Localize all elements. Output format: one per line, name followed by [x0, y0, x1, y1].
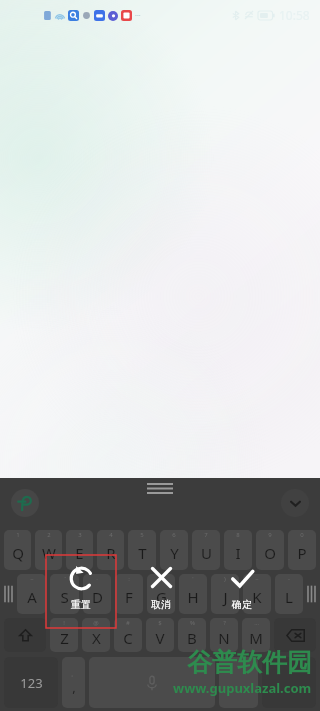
button[interactable]: @: [82, 618, 110, 652]
staticText: U: [201, 543, 212, 563]
staticText: F: [125, 587, 133, 607]
staticText: 0: [300, 531, 304, 539]
button[interactable]: 7: [192, 530, 220, 570]
button[interactable]: 6: [160, 530, 188, 570]
staticText: -: [288, 575, 290, 583]
button[interactable]: 取消: [146, 565, 176, 595]
staticText: 7: [204, 531, 208, 539]
staticText: ): [224, 575, 226, 583]
staticText: M: [249, 628, 263, 648]
button[interactable]: …: [242, 618, 270, 652]
button[interactable]: $: [146, 618, 174, 652]
button[interactable]: ~: [243, 574, 271, 614]
button[interactable]: 1: [4, 530, 31, 570]
staticText: 8: [236, 531, 240, 539]
staticText: ···: [135, 11, 141, 21]
staticText: H: [187, 587, 199, 607]
staticText: K: [252, 587, 262, 607]
staticText: ,: [72, 678, 76, 696]
staticText: Z: [60, 628, 69, 648]
staticText: $: [158, 619, 162, 627]
button[interactable]: ·: [83, 574, 111, 614]
button[interactable]: [219, 657, 258, 708]
staticText: ~: [255, 575, 259, 583]
staticText: !: [63, 619, 65, 627]
staticText: W: [42, 543, 56, 563]
button[interactable]: Shift: [4, 618, 46, 652]
staticText: 5: [140, 531, 144, 539]
button[interactable]: 删除: [274, 618, 316, 652]
button[interactable]: ': [179, 574, 207, 614]
staticText: 10:58: [279, 7, 310, 23]
staticText: S: [60, 587, 69, 607]
staticText: 6: [172, 531, 176, 539]
staticText: `: [64, 575, 66, 583]
staticText: ;: [160, 575, 162, 583]
button[interactable]: 空格 语音输入: [89, 657, 215, 708]
staticText: E: [75, 543, 84, 563]
button[interactable]: [262, 657, 316, 708]
button[interactable]: ?: [210, 618, 238, 652]
staticText: G: [156, 587, 167, 607]
button[interactable]: 输入法设置: [11, 489, 39, 517]
staticText: X: [92, 628, 101, 648]
staticText: 9: [268, 531, 272, 539]
button[interactable]: 收起键盘: [281, 489, 309, 517]
button[interactable]: `: [50, 574, 79, 614]
staticText: L: [285, 587, 293, 607]
button[interactable]: ): [211, 574, 239, 614]
staticText: 重置: [56, 598, 106, 611]
button[interactable]: :: [115, 574, 143, 614]
staticText: #: [126, 619, 130, 627]
button[interactable]: %: [178, 618, 206, 652]
button[interactable]: 9: [256, 530, 284, 570]
staticText: @: [93, 619, 99, 627]
staticText: V: [155, 628, 165, 648]
button[interactable]: 3: [66, 530, 93, 570]
button[interactable]: ~: [17, 574, 46, 614]
button[interactable]: 8: [224, 530, 252, 570]
staticText: 4: [109, 531, 113, 539]
staticText: %: [190, 619, 195, 627]
staticText: 1: [16, 531, 20, 539]
staticText: Y: [170, 543, 179, 563]
staticText: P: [297, 543, 307, 563]
staticText: D: [92, 587, 103, 607]
staticText: www.gupuxlazal.com: [173, 679, 312, 697]
staticText: T: [138, 543, 147, 563]
staticText: R: [106, 543, 116, 563]
staticText: I: [235, 543, 241, 563]
staticText: N: [218, 628, 230, 648]
staticText: 123: [20, 674, 43, 692]
staticText: B: [187, 628, 197, 648]
staticText: 2: [47, 531, 51, 539]
button[interactable]: 0: [288, 530, 316, 570]
button[interactable]: 5: [128, 530, 156, 570]
staticText: 取消: [136, 598, 186, 611]
staticText: J: [223, 587, 228, 607]
staticText: Q: [12, 543, 24, 563]
staticText: A: [27, 587, 37, 607]
button[interactable]: ;: [147, 574, 175, 614]
staticText: 确定: [217, 598, 267, 611]
staticText: ~: [30, 575, 34, 583]
button[interactable]: 确定: [226, 566, 258, 598]
button[interactable]: 2: [35, 530, 62, 570]
button[interactable]: 4: [97, 530, 124, 570]
staticText: ?: [223, 619, 226, 627]
button[interactable]: -: [275, 574, 303, 614]
staticText: C: [123, 628, 133, 648]
button[interactable]: !: [50, 618, 78, 652]
button[interactable]: #: [114, 618, 142, 652]
staticText: 谷普软件园: [187, 647, 312, 678]
button[interactable]: 重置: [62, 565, 100, 603]
staticText: O: [264, 543, 276, 563]
staticText: 3: [78, 531, 82, 539]
button[interactable]: 123: [4, 657, 58, 708]
